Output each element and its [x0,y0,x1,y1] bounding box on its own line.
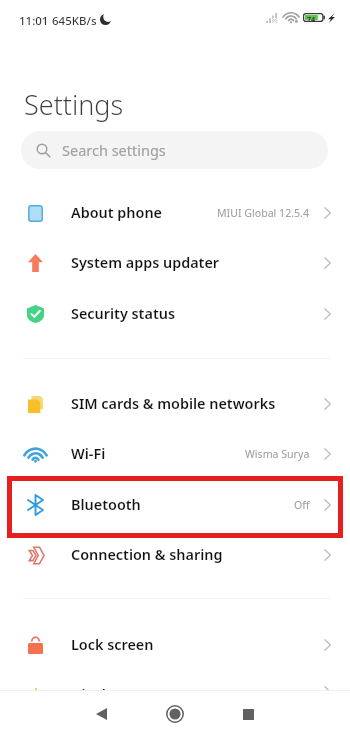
button[interactable]: Home [151,690,199,738]
staticText: Display [71,685,123,704]
button[interactable]: System apps updater [0,238,350,288]
button[interactable]: Recents [224,690,272,738]
button[interactable]: Connection & sharing [0,530,350,580]
staticText: 645KB/s [52,13,97,29]
staticText: Wisma Surya [245,447,310,461]
button[interactable]: About phone [0,188,350,238]
staticText: System apps updater [71,253,220,273]
staticText: Bluetooth [71,495,141,515]
staticText: About phone [71,203,162,223]
button[interactable]: Bluetooth [0,480,350,530]
staticText: Security status [71,304,176,324]
staticText: MIUI Global 12.5.4 [217,206,310,220]
staticText: Off [294,498,310,512]
button[interactable]: Wi-Fi [0,429,350,479]
button[interactable]: SIM cards & mobile networks [0,379,350,429]
button[interactable]: Search settings [21,131,328,169]
staticText: Lock screen [71,635,154,655]
staticText: 74 [307,14,316,24]
staticText: Connection & sharing [71,545,223,565]
button[interactable]: Security status [0,289,350,339]
staticText: Search settings [62,140,166,160]
staticText: Wi-Fi [71,444,106,464]
staticText: Settings [24,86,124,123]
button[interactable]: Lock screen [0,620,350,670]
staticText: SIM cards & mobile networks [71,394,276,414]
button[interactable]: Back [77,690,125,738]
button[interactable]: Display [0,672,350,691]
staticText: 11:01 [19,13,49,29]
